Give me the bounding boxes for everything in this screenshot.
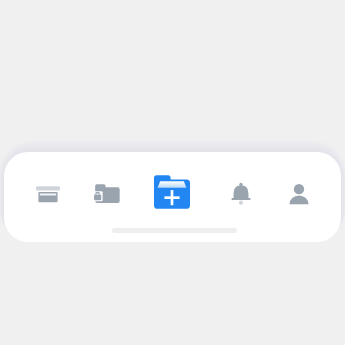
button[interactable]: Private folder xyxy=(86,174,126,214)
button[interactable]: Notifications xyxy=(221,174,261,214)
button[interactable]: Account xyxy=(279,174,319,214)
button[interactable]: Archive xyxy=(28,174,68,214)
button[interactable]: New folder xyxy=(150,172,194,216)
